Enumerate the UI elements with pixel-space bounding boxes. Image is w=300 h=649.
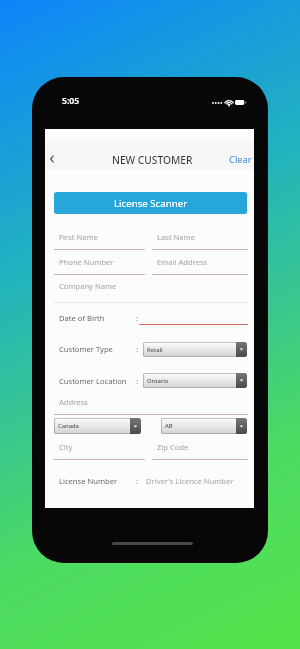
staticText: Retail: [147, 346, 163, 354]
button[interactable]: Clear: [224, 153, 252, 167]
button[interactable]: AB: [161, 418, 247, 434]
staticText: Zip Code: [157, 442, 189, 452]
staticText: Customer Location: [59, 376, 127, 386]
button[interactable]: Back: [45, 149, 61, 169]
button[interactable]: Canada: [54, 418, 141, 434]
button[interactable]: First Name: [54, 230, 145, 250]
staticText: Customer Type: [59, 344, 113, 354]
staticText: Date of Birth: [59, 313, 105, 323]
staticText: Address: [59, 397, 88, 407]
button[interactable]: Ontario: [143, 373, 247, 388]
button[interactable]: Last Name: [152, 230, 248, 250]
button[interactable]: License Scanner: [54, 192, 247, 214]
staticText: Email Address: [157, 257, 208, 267]
button[interactable]: Company Name: [54, 279, 248, 299]
button[interactable]: Email Address: [152, 255, 248, 275]
button[interactable]: City: [54, 440, 145, 460]
staticText: :: [136, 476, 139, 486]
staticText: Clear: [229, 153, 252, 166]
staticText: Driver's Licence Number: [146, 476, 234, 486]
button[interactable]: Retail: [143, 342, 247, 357]
staticText: Phone Number: [59, 257, 114, 267]
staticText: License Number: [59, 476, 118, 486]
staticText: :: [136, 376, 139, 386]
button[interactable]: Zip Code: [152, 440, 248, 460]
staticText: License Scanner: [114, 197, 188, 210]
staticText: Ontario: [147, 377, 169, 385]
staticText: 5:05: [62, 95, 80, 107]
button[interactable]: Address: [54, 395, 248, 415]
staticText: NEW CUSTOMER: [112, 153, 193, 167]
staticText: Company Name: [59, 281, 117, 291]
staticText: AB: [165, 422, 173, 430]
staticText: Canada: [58, 422, 79, 430]
button[interactable]: [139, 313, 248, 325]
staticText: City: [59, 442, 73, 452]
staticText: Last Name: [157, 232, 196, 242]
staticText: First Name: [59, 232, 98, 242]
staticText: :: [136, 344, 139, 354]
staticText: :: [136, 313, 139, 323]
button[interactable]: Phone Number: [54, 255, 145, 275]
